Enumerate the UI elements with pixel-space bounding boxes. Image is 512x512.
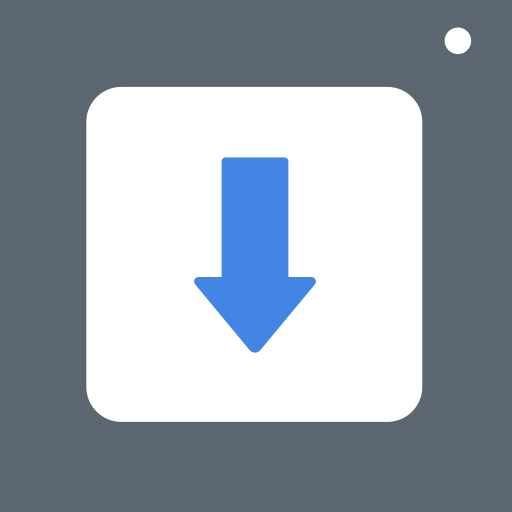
button[interactable]: Download xyxy=(86,87,422,422)
button[interactable]: Status xyxy=(445,27,471,54)
